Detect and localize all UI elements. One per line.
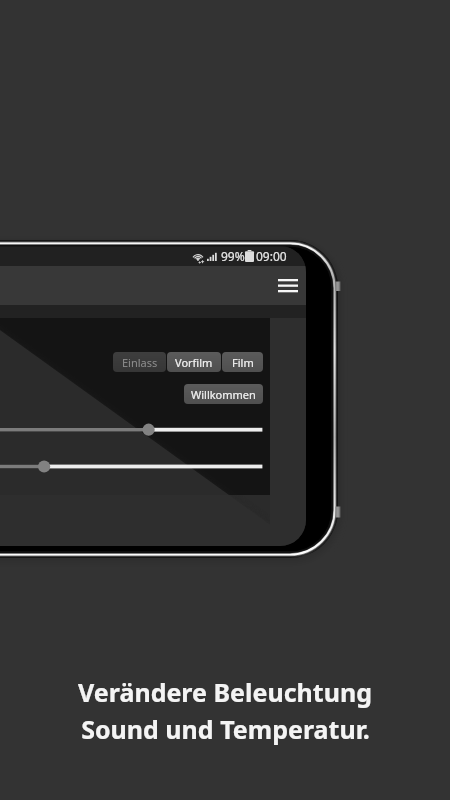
staticText: Willkommen [191, 387, 256, 402]
button[interactable]: Willkommen [184, 384, 263, 404]
staticText: Verändere Beleuchtung [78, 675, 372, 709]
staticText: Sound und Temperatur. [81, 712, 370, 746]
staticText: 99% [221, 248, 245, 264]
button[interactable]: Vorfilm [167, 352, 221, 372]
staticText: Film [232, 355, 254, 370]
staticText: Vorfilm [175, 355, 213, 370]
button[interactable]: Open navigation menu [273, 271, 303, 301]
staticText: Einlass [122, 355, 158, 370]
button[interactable]: Einlass [113, 352, 166, 372]
staticText: 09:00 [256, 248, 287, 264]
button[interactable]: Film [222, 352, 263, 372]
